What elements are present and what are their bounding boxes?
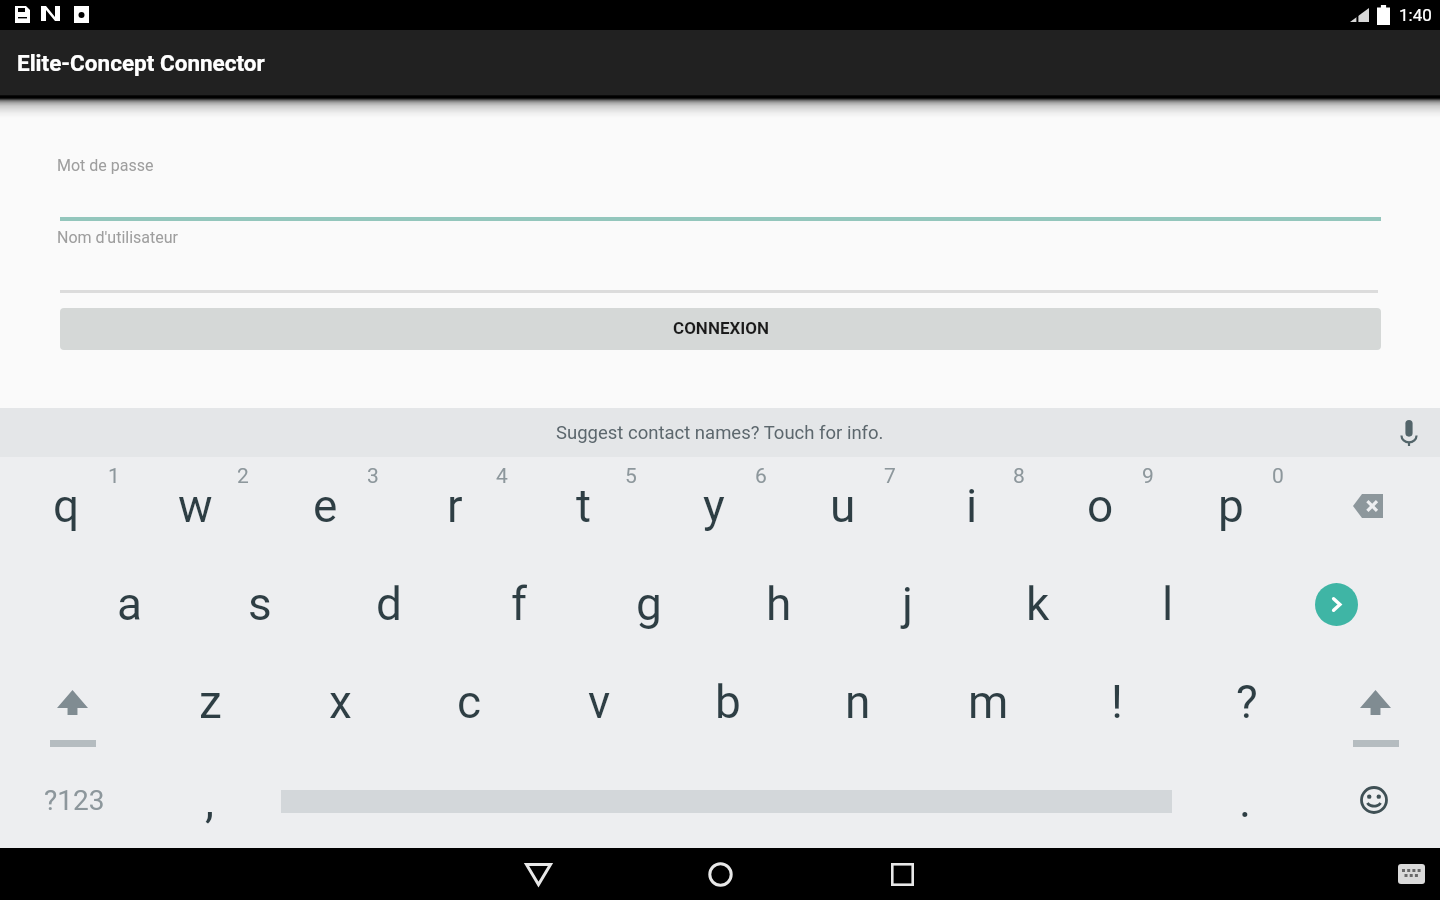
staticText: 4 xyxy=(496,464,508,489)
staticText: j xyxy=(902,577,914,631)
staticText: x xyxy=(329,675,352,729)
button[interactable]: 5 xyxy=(519,457,648,555)
staticText: w xyxy=(178,479,213,533)
button[interactable]: Shift xyxy=(0,653,145,751)
staticText: 3 xyxy=(367,464,379,489)
button[interactable]: c xyxy=(404,653,534,751)
button[interactable]: ? xyxy=(1182,653,1312,751)
staticText: b xyxy=(715,675,741,729)
staticText: f xyxy=(511,577,527,631)
staticText: z xyxy=(199,675,222,729)
staticText: q xyxy=(53,479,80,533)
staticText: h xyxy=(766,577,792,631)
button[interactable]: v xyxy=(534,653,664,751)
staticText: ! xyxy=(1111,675,1123,729)
staticText: r xyxy=(447,479,463,533)
staticText: CONNEXION xyxy=(673,318,769,338)
button[interactable]: CONNEXION xyxy=(60,308,1381,350)
staticText: d xyxy=(376,577,402,631)
staticText: p xyxy=(1218,479,1244,533)
button[interactable]: , xyxy=(149,751,271,849)
staticText: c xyxy=(457,675,482,729)
button[interactable]: x xyxy=(275,653,405,751)
staticText: k xyxy=(1026,577,1050,631)
staticText: i xyxy=(966,479,978,533)
button[interactable]: a xyxy=(65,555,195,653)
staticText: Suggest contact names? Touch for info. xyxy=(556,422,884,444)
button[interactable]: l xyxy=(1103,555,1233,653)
button[interactable]: 1 xyxy=(2,457,131,555)
button[interactable]: g xyxy=(584,555,714,653)
staticText: n xyxy=(845,675,871,729)
staticText: 2 xyxy=(237,464,249,489)
staticText: 0 xyxy=(1272,464,1284,489)
button[interactable]: Space xyxy=(271,751,1182,849)
staticText: ?123 xyxy=(44,784,105,817)
button[interactable]: 8 xyxy=(907,457,1036,555)
button[interactable]: 6 xyxy=(649,457,778,555)
button[interactable]: Mot de passe xyxy=(57,151,1381,221)
button[interactable]: Voice input xyxy=(1378,408,1440,457)
staticText: Nom d'utilisateur xyxy=(57,228,179,247)
button[interactable]: . xyxy=(1182,751,1308,849)
staticText: l xyxy=(1162,577,1174,631)
button[interactable]: b xyxy=(663,653,793,751)
staticText: y xyxy=(703,479,725,533)
button[interactable]: Back xyxy=(493,848,583,900)
staticText: Elite-Concept Connector xyxy=(17,50,265,76)
button[interactable]: 4 xyxy=(390,457,519,555)
staticText: . xyxy=(1239,774,1252,828)
button[interactable]: k xyxy=(973,555,1103,653)
button[interactable]: n xyxy=(793,653,923,751)
staticText: u xyxy=(830,479,856,533)
button[interactable]: Recents xyxy=(857,848,947,900)
button[interactable]: Backspace xyxy=(1295,457,1440,555)
button[interactable]: j xyxy=(843,555,973,653)
button[interactable]: f xyxy=(454,555,584,653)
staticText: o xyxy=(1087,479,1114,533)
button[interactable]: h xyxy=(714,555,844,653)
staticText: 1:40 xyxy=(1399,5,1432,25)
button[interactable]: Change keyboard xyxy=(1387,850,1435,898)
staticText: g xyxy=(636,577,662,631)
staticText: e xyxy=(313,479,338,533)
staticText: 8 xyxy=(1013,464,1025,489)
button[interactable]: s xyxy=(195,555,325,653)
button[interactable]: Enter xyxy=(1232,555,1440,653)
staticText: 6 xyxy=(755,464,767,489)
staticText: m xyxy=(968,675,1009,729)
button[interactable]: m xyxy=(923,653,1053,751)
button[interactable]: 7 xyxy=(778,457,907,555)
button[interactable]: Shift xyxy=(1311,653,1440,751)
button[interactable]: 0 xyxy=(1166,457,1295,555)
button[interactable]: z xyxy=(145,653,275,751)
staticText: 7 xyxy=(884,464,896,489)
staticText: 1 xyxy=(108,464,120,489)
button[interactable]: 9 xyxy=(1036,457,1165,555)
staticText: a xyxy=(117,577,143,631)
staticText: s xyxy=(248,577,272,631)
button[interactable]: 3 xyxy=(261,457,390,555)
staticText: t xyxy=(576,479,592,533)
staticText: 9 xyxy=(1142,464,1154,489)
staticText: v xyxy=(588,675,611,729)
staticText: Mot de passe xyxy=(57,156,154,175)
button[interactable]: d xyxy=(324,555,454,653)
staticText: 5 xyxy=(625,464,637,489)
button[interactable]: Home xyxy=(675,848,765,900)
button[interactable]: Emoji xyxy=(1308,751,1440,849)
button[interactable]: 2 xyxy=(131,457,260,555)
button[interactable]: ! xyxy=(1052,653,1182,751)
button[interactable]: Symbols xyxy=(0,751,149,849)
button[interactable]: Nom d'utilisateur xyxy=(57,223,1378,293)
staticText: , xyxy=(205,774,215,828)
staticText: ? xyxy=(1236,675,1258,729)
